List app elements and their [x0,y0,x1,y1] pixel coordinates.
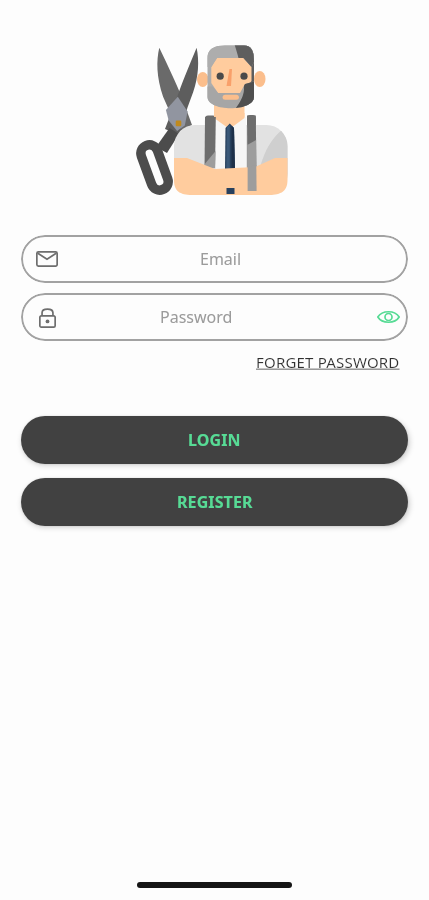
button[interactable]: Email [21,235,408,283]
button[interactable]: FORGET PASSWORD [256,352,400,372]
staticText: Email [200,248,242,270]
button[interactable]: Password [21,293,408,341]
button[interactable]: LOGIN [21,416,408,464]
button[interactable]: Show password [368,297,408,337]
staticText: REGISTER [177,491,253,513]
staticText: Password [160,306,233,328]
staticText: LOGIN [188,429,241,451]
button[interactable]: REGISTER [21,478,408,526]
